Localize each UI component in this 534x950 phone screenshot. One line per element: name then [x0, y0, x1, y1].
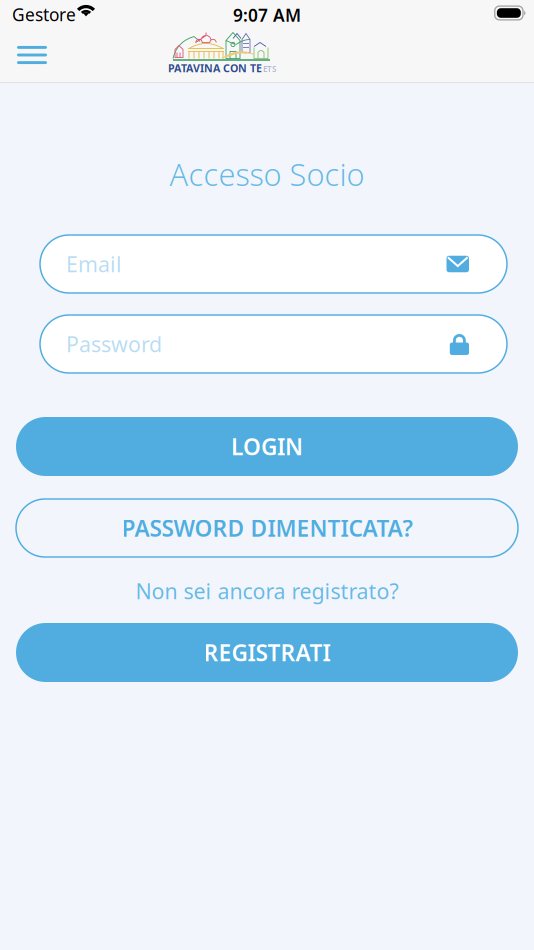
- staticText: PASSWORD DIMENTICATA?: [121, 513, 412, 543]
- staticText: Accesso Socio: [169, 154, 364, 194]
- staticText: PATAVINA CON TE: [168, 61, 262, 75]
- staticText: REGISTRATI: [203, 637, 330, 667]
- button[interactable]: LOGIN: [16, 417, 518, 476]
- button[interactable]: Non sei ancora registrato?: [16, 575, 518, 607]
- staticText: Password: [66, 330, 162, 358]
- button[interactable]: PASSWORD DIMENTICATA?: [16, 499, 518, 557]
- button[interactable]: Password: [40, 315, 507, 373]
- button[interactable]: REGISTRATI: [16, 623, 518, 682]
- staticText: Non sei ancora registrato?: [135, 577, 398, 605]
- button[interactable]: Menu: [8, 33, 56, 77]
- staticText: Email: [66, 250, 122, 278]
- staticText: LOGIN: [231, 431, 303, 461]
- button[interactable]: Email: [40, 235, 507, 293]
- staticText: Gestore: [12, 3, 76, 26]
- staticText: ETS: [263, 63, 276, 74]
- staticText: 9:07 AM: [233, 3, 301, 26]
